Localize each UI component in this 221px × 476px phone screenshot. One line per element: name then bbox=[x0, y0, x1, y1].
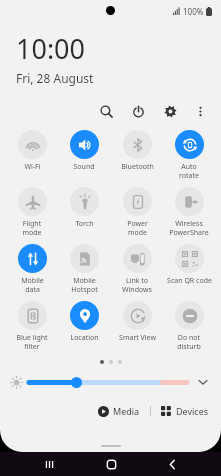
staticText: Sound bbox=[73, 162, 95, 172]
staticText: Flight mode bbox=[22, 219, 42, 237]
button[interactable]: Do not disturb bbox=[164, 299, 214, 351]
staticText: Blue light filter bbox=[16, 333, 48, 351]
staticText: Link to Windows bbox=[122, 276, 152, 294]
button[interactable]: Torch bbox=[59, 185, 109, 229]
staticText: Wireless PowerShare bbox=[169, 219, 209, 237]
staticText: Power mode bbox=[127, 219, 148, 237]
button[interactable]: Scan QR code bbox=[164, 242, 214, 286]
button[interactable]: Sound bbox=[59, 128, 109, 172]
staticText: Media bbox=[113, 405, 140, 417]
button[interactable]: Blue light filter bbox=[7, 299, 57, 351]
staticText: Auto rotate bbox=[179, 162, 199, 180]
button[interactable]: Settings bbox=[159, 100, 181, 122]
staticText: Fri, 28 August bbox=[16, 70, 94, 86]
button[interactable]: Media bbox=[98, 405, 140, 417]
staticText: Bluetooth bbox=[121, 162, 154, 172]
button[interactable]: More options bbox=[189, 100, 211, 122]
button[interactable]: Home bbox=[98, 452, 124, 476]
button[interactable]: Back bbox=[159, 452, 185, 476]
staticText: 10:00 bbox=[16, 30, 86, 67]
staticText: 100% bbox=[183, 6, 204, 17]
staticText: Location bbox=[70, 333, 99, 343]
button[interactable] bbox=[29, 375, 187, 389]
staticText: Mobile Hotspot bbox=[71, 276, 98, 294]
button[interactable]: Wi-Fi bbox=[7, 128, 57, 172]
button[interactable]: Power mode bbox=[112, 185, 162, 237]
staticText: Scan QR code bbox=[167, 276, 212, 286]
button[interactable]: Wireless PowerShare bbox=[164, 185, 214, 237]
button[interactable]: Mobile Hotspot bbox=[59, 242, 109, 294]
button[interactable]: Search bbox=[95, 100, 117, 122]
button[interactable]: Mobile data bbox=[7, 242, 57, 294]
button[interactable]: Bluetooth bbox=[112, 128, 162, 172]
button[interactable]: Devices bbox=[161, 405, 209, 417]
button[interactable]: Power bbox=[127, 100, 149, 122]
button[interactable]: Smart View bbox=[112, 299, 162, 343]
button[interactable]: Flight mode bbox=[7, 185, 57, 237]
button[interactable]: Auto rotate bbox=[164, 128, 214, 180]
button[interactable]: Recent apps bbox=[36, 452, 62, 476]
button[interactable]: Expand brightness settings bbox=[195, 374, 211, 390]
staticText: Smart View bbox=[119, 333, 156, 343]
button[interactable]: Link to Windows bbox=[112, 242, 162, 294]
staticText: Wi-Fi bbox=[24, 162, 41, 172]
staticText: Mobile data bbox=[21, 276, 44, 294]
button[interactable]: Location bbox=[59, 299, 109, 343]
staticText: Devices bbox=[176, 405, 209, 417]
staticText: Torch bbox=[75, 219, 94, 229]
staticText: Do not disturb bbox=[177, 333, 201, 351]
